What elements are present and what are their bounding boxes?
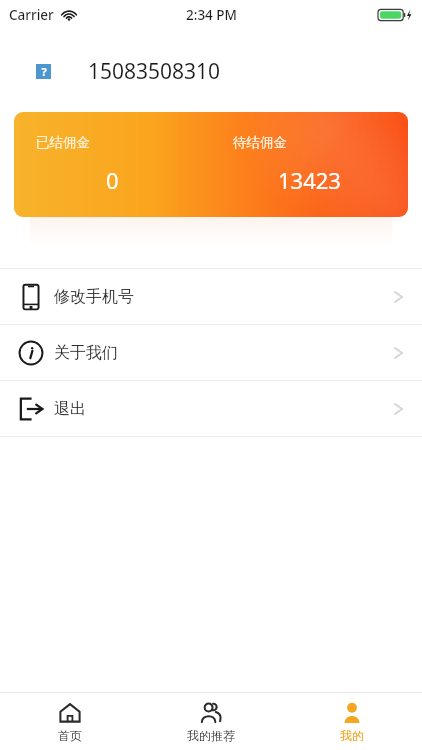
- staticText: 关于我们: [54, 343, 118, 363]
- button[interactable]: 已结佣金: [14, 112, 408, 217]
- staticText: 已结佣金: [36, 134, 90, 151]
- staticText: Carrier: [9, 6, 54, 24]
- button[interactable]: 首页: [0, 693, 140, 750]
- staticText: 首页: [58, 728, 82, 743]
- button[interactable]: 修改手机号: [0, 269, 422, 324]
- staticText: 我的推荐: [187, 728, 235, 743]
- staticText: 我的: [340, 728, 364, 743]
- staticText: 退出: [54, 399, 86, 419]
- button[interactable]: 我的推荐: [140, 693, 281, 750]
- staticText: ?: [41, 64, 47, 79]
- staticText: 待结佣金: [233, 134, 287, 151]
- button[interactable]: 我的: [281, 693, 422, 750]
- staticText: 修改手机号: [54, 287, 134, 307]
- staticText: 15083508310: [88, 57, 221, 86]
- staticText: 13423: [278, 165, 341, 195]
- button[interactable]: 关于我们: [0, 325, 422, 380]
- staticText: 0: [106, 165, 119, 195]
- button[interactable]: 退出: [0, 381, 422, 436]
- staticText: 2:34 PM: [186, 6, 237, 24]
